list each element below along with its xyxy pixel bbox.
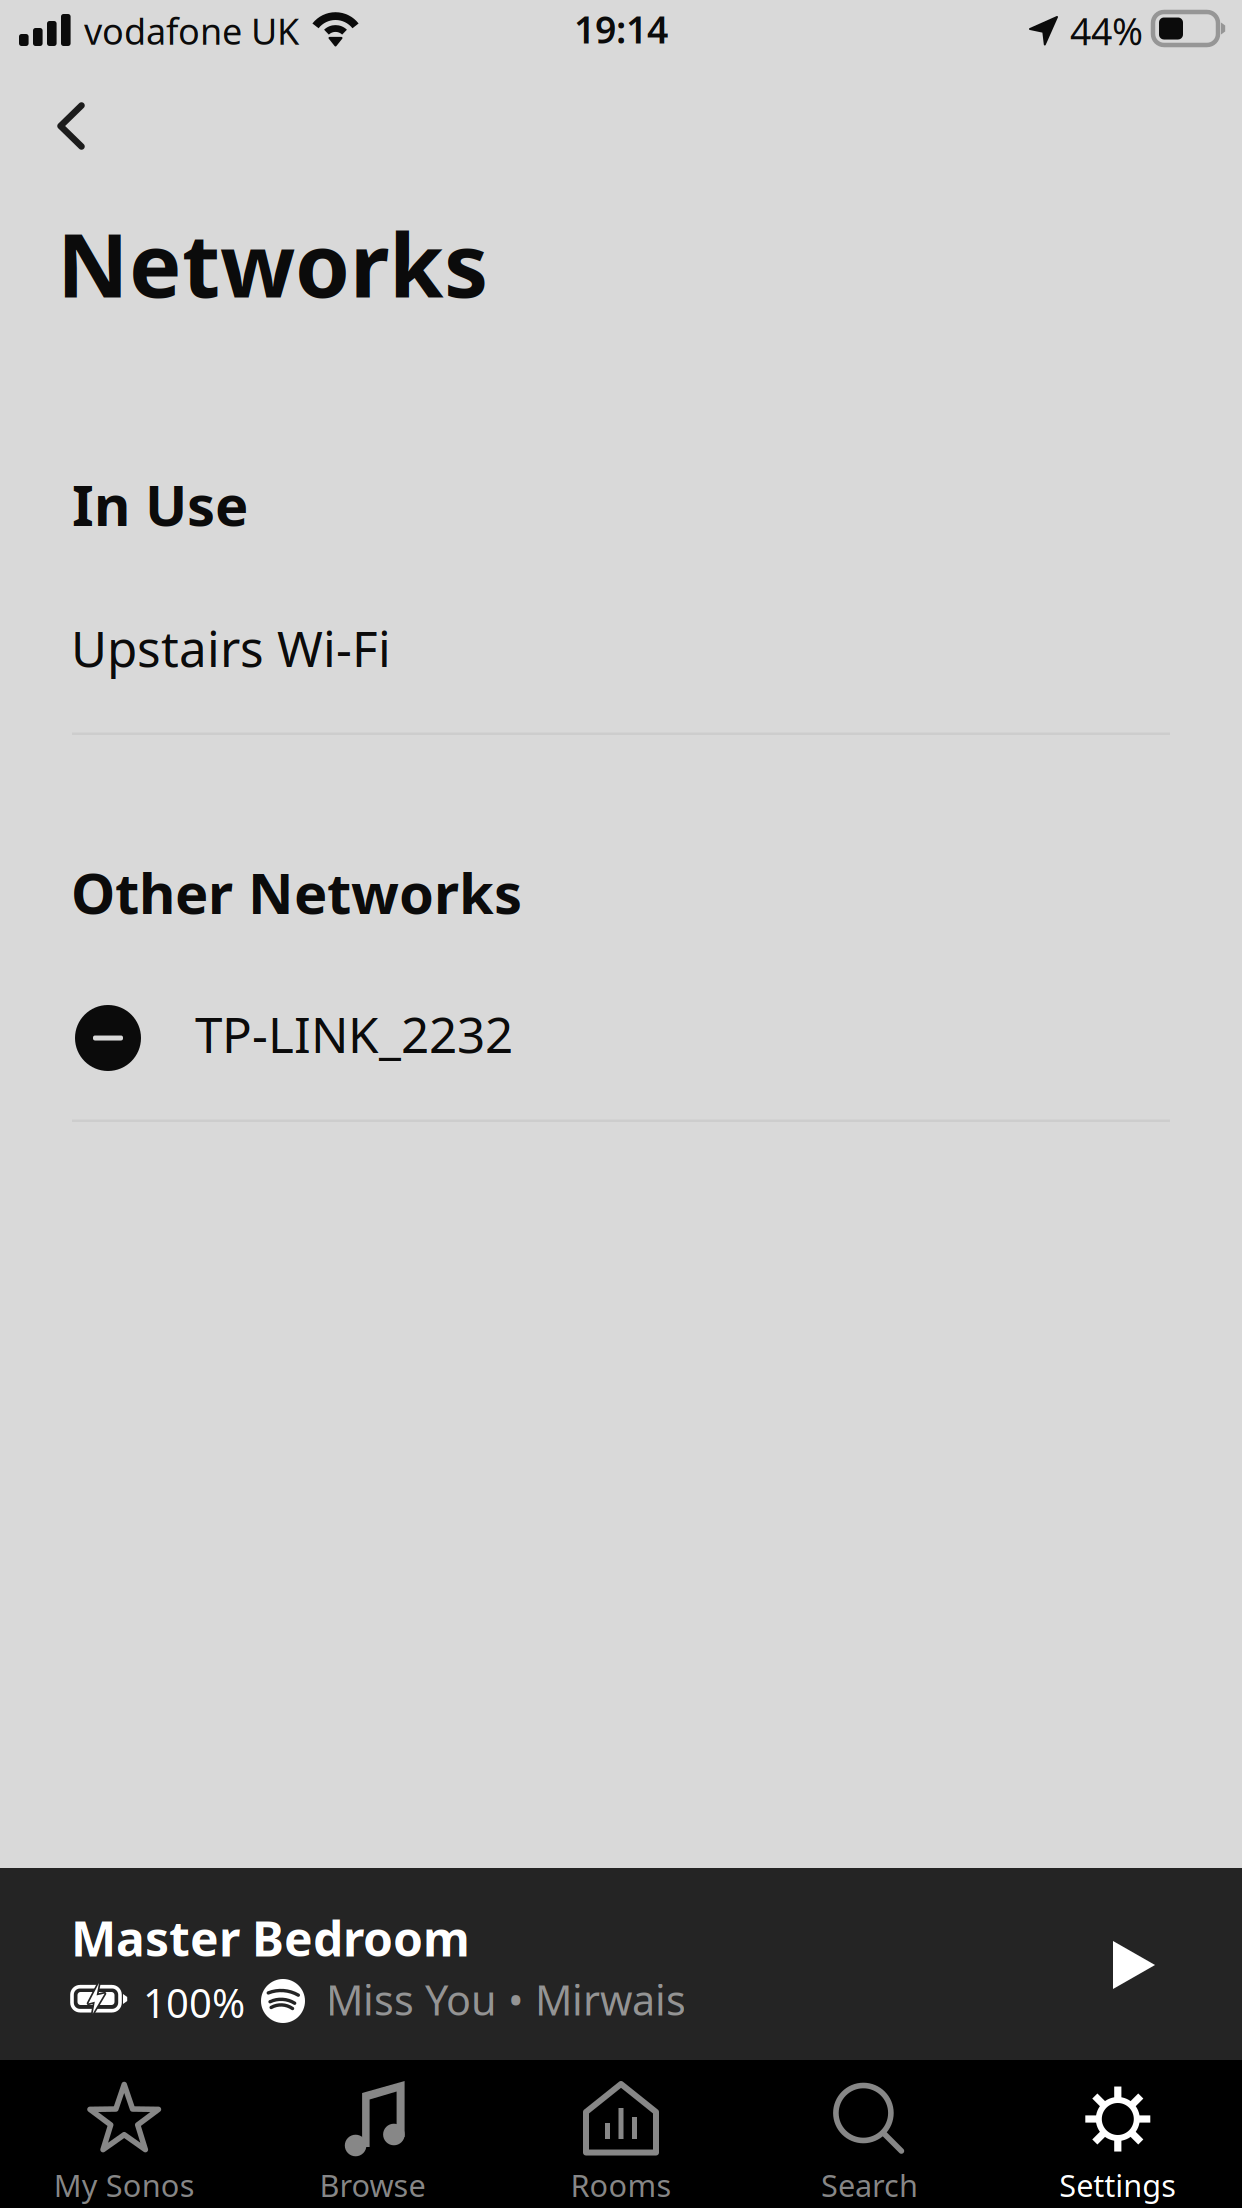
staticText: In Use (72, 467, 248, 541)
staticText: vodafone UK (84, 7, 299, 55)
button[interactable]: Settings (994, 2060, 1242, 2208)
staticText: TP-LINK_2232 (195, 1001, 513, 1066)
button[interactable]: Upstairs Wi-Fi (72, 600, 1170, 708)
button[interactable]: Master Bedroom (0, 1868, 1242, 2060)
staticText: Networks (57, 205, 488, 322)
staticText: Master Bedroom (71, 1906, 470, 1970)
staticText: Upstairs Wi-Fi (71, 615, 391, 680)
staticText: Miss You • Mirwais (326, 1972, 686, 2027)
button[interactable]: Back (16, 71, 126, 181)
staticText: 44% (1070, 6, 1143, 56)
button[interactable]: My Sonos (0, 2060, 248, 2208)
staticText: 100% (143, 1976, 245, 2029)
staticText: My Sonos (54, 2165, 195, 2205)
staticText: 19:14 (574, 4, 668, 54)
staticText: Settings (1059, 2165, 1176, 2205)
button[interactable]: Browse (248, 2060, 497, 2208)
button[interactable]: Rooms (497, 2060, 745, 2208)
staticText: Other Networks (71, 855, 522, 929)
staticText: Browse (320, 2165, 426, 2205)
button[interactable]: Search (745, 2060, 994, 2208)
staticText: Search (821, 2165, 918, 2205)
staticText: Rooms (570, 2165, 671, 2205)
button[interactable]: TP-LINK_2232 (72, 975, 1170, 1101)
